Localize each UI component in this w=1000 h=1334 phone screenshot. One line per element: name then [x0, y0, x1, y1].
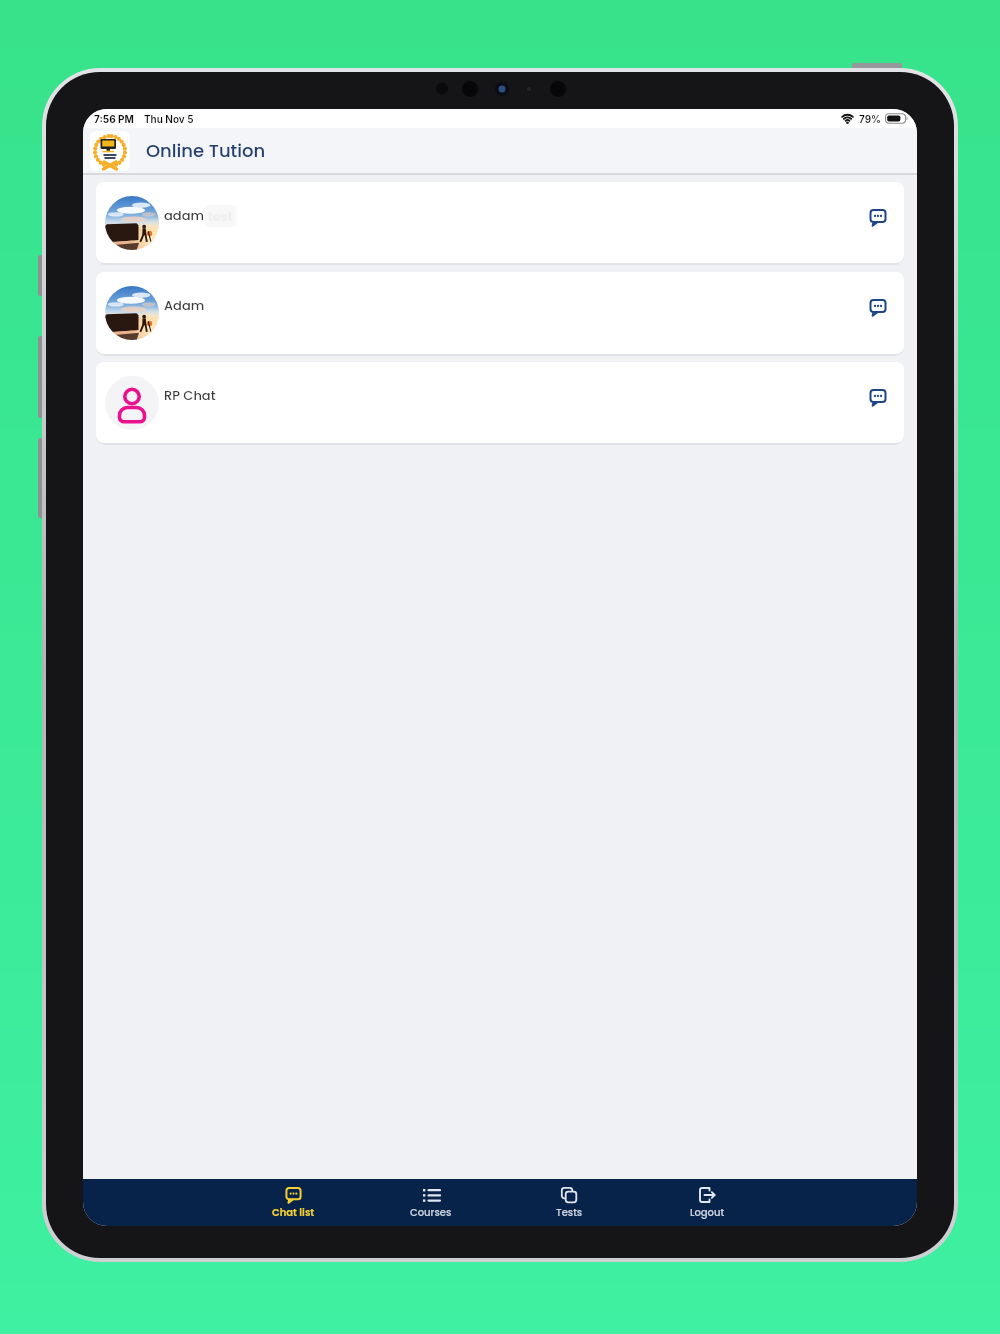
staticText: Adam: [164, 296, 205, 314]
staticText: Tests: [556, 1205, 583, 1219]
button[interactable]: Courses: [362, 1179, 500, 1226]
button[interactable]: Chat list: [224, 1179, 362, 1226]
staticText: test: [208, 207, 233, 225]
staticText: Online Tution: [146, 138, 266, 163]
button[interactable]: Tests: [500, 1179, 638, 1226]
staticText: adam: [164, 206, 204, 224]
staticText: 79%: [859, 113, 882, 125]
button[interactable]: Adam: [96, 272, 904, 354]
button[interactable]: Logout: [638, 1179, 776, 1226]
staticText: 7:56 PM: [94, 113, 134, 125]
staticText: Chat list: [272, 1205, 315, 1219]
button[interactable]: RP Chat: [96, 362, 904, 443]
staticText: RP Chat: [164, 386, 216, 404]
staticText: Logout: [690, 1205, 725, 1219]
staticText: Courses: [410, 1205, 452, 1219]
button[interactable]: test: [96, 182, 904, 263]
staticText: Thu Nov 5: [144, 113, 194, 125]
